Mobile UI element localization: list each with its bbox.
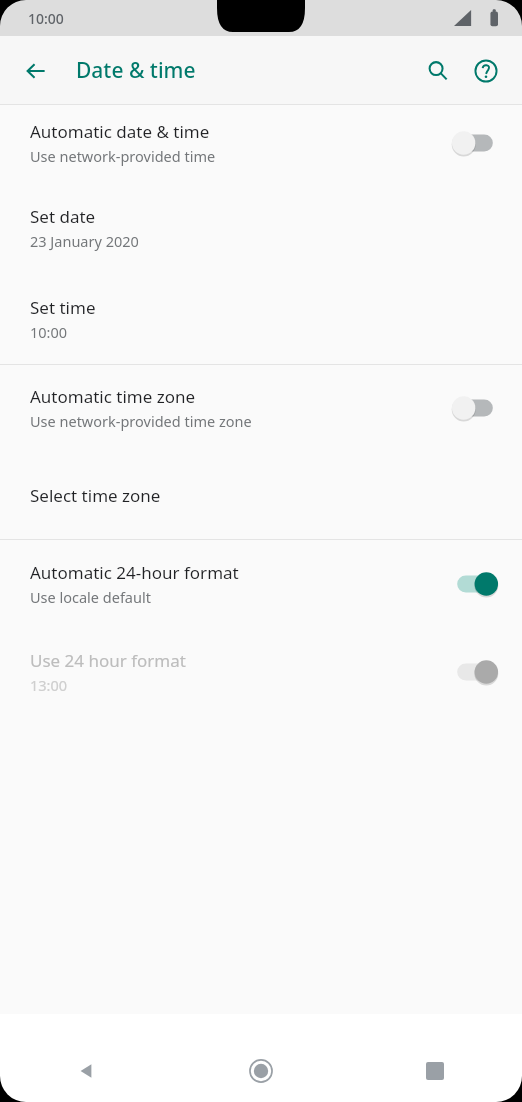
button[interactable]: Back — [0, 1040, 174, 1102]
staticText: Use 24 hour format — [30, 649, 186, 672]
button[interactable]: Home — [174, 1040, 348, 1102]
button[interactable]: Help — [462, 47, 510, 95]
staticText: 10:00 — [30, 322, 68, 342]
button[interactable]: Back — [12, 47, 60, 95]
button[interactable]: Select time zone — [0, 451, 522, 539]
button[interactable]: Automatic date & time — [0, 105, 522, 181]
staticText: Automatic time zone — [30, 385, 196, 408]
button[interactable]: Search — [414, 47, 462, 95]
button[interactable]: Toggle — [448, 126, 502, 160]
staticText: Set date — [30, 205, 96, 228]
button[interactable]: Recent apps — [348, 1040, 522, 1102]
staticText: Automatic 24-hour format — [30, 561, 239, 584]
button[interactable]: Set time — [0, 274, 522, 364]
button[interactable]: Toggle — [448, 655, 502, 689]
button[interactable]: Toggle — [448, 567, 502, 601]
button[interactable]: Use 24 hour format — [0, 628, 522, 716]
staticText: 10:00 — [28, 9, 64, 28]
staticText: Set time — [30, 296, 96, 319]
button[interactable]: Automatic 24-hour format — [0, 540, 522, 628]
staticText: Select time zone — [30, 484, 161, 507]
button[interactable]: Set date — [0, 181, 522, 274]
button[interactable]: Automatic time zone — [0, 365, 522, 451]
staticText: Use network-provided time — [30, 146, 216, 166]
staticText: Automatic date & time — [30, 120, 210, 143]
staticText: Use network-provided time zone — [30, 411, 252, 431]
staticText: Use locale default — [30, 587, 151, 607]
staticText: 13:00 — [30, 675, 68, 695]
staticText: Date & time — [76, 56, 196, 85]
staticText: 23 January 2020 — [30, 231, 139, 251]
button[interactable]: Toggle — [448, 391, 502, 425]
